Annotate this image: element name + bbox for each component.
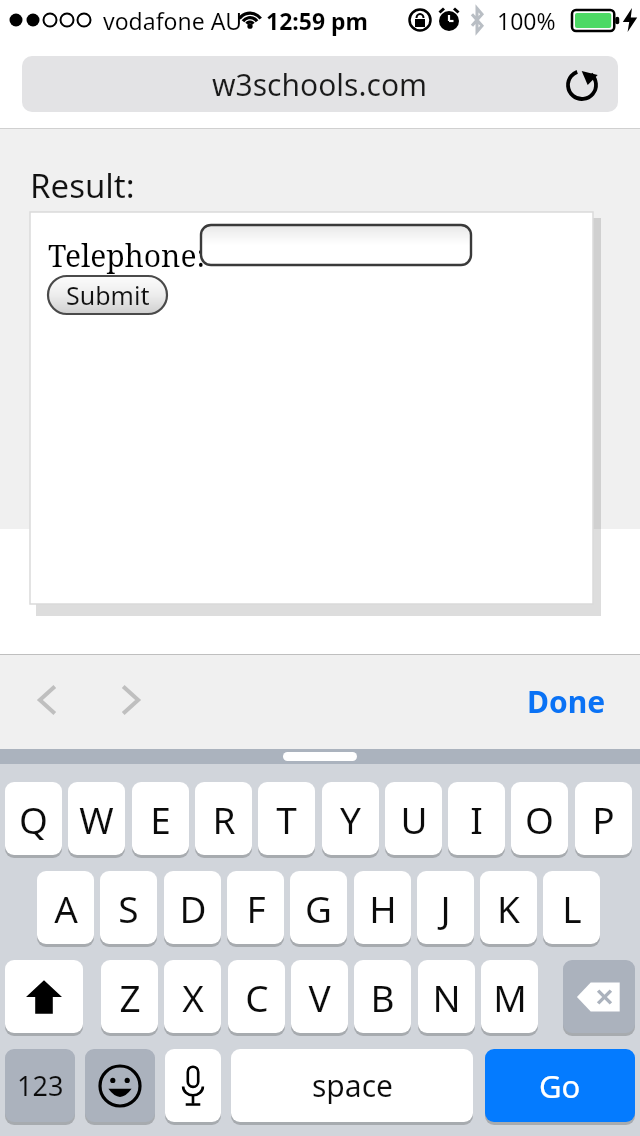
button[interactable]: L	[543, 871, 600, 944]
staticText: K	[497, 883, 520, 933]
button[interactable]: Done	[519, 671, 614, 732]
button[interactable]: T	[258, 782, 315, 855]
staticText: R	[212, 794, 236, 844]
button[interactable]: Emoji	[85, 1049, 155, 1122]
button[interactable]: X	[164, 960, 221, 1033]
button[interactable]: B	[354, 960, 411, 1033]
staticText: G	[305, 883, 332, 933]
staticText: N	[432, 972, 461, 1022]
button[interactable]: U	[385, 782, 442, 855]
staticText: Y	[340, 794, 361, 844]
staticText: S	[118, 883, 139, 933]
staticText: Result:	[30, 163, 135, 208]
button[interactable]: w3schools.com	[22, 56, 618, 112]
button[interactable]: Dictate	[165, 1049, 221, 1122]
staticText: Q	[19, 794, 48, 844]
button[interactable]: W	[68, 782, 125, 855]
button[interactable]: E	[132, 782, 189, 855]
staticText: space	[312, 1065, 393, 1106]
staticText: V	[308, 972, 331, 1022]
button[interactable]	[201, 225, 471, 265]
button[interactable]: Next field	[100, 670, 160, 730]
staticText: Telephone:	[48, 235, 206, 276]
staticText: Done	[527, 681, 606, 722]
button[interactable]: Go	[485, 1049, 635, 1122]
staticText: J	[440, 883, 451, 933]
button[interactable]: H	[354, 871, 411, 944]
button[interactable]: G	[290, 871, 347, 944]
button[interactable]: A	[37, 871, 94, 944]
staticText: 100%	[497, 5, 556, 36]
staticText: w3schools.com	[212, 64, 428, 105]
button[interactable]: V	[291, 960, 348, 1033]
staticText: Go	[539, 1065, 581, 1107]
staticText: C	[245, 972, 269, 1022]
button[interactable]: Previous field	[18, 670, 78, 730]
button[interactable]: F	[227, 871, 284, 944]
button[interactable]: Q	[5, 782, 62, 855]
staticText: X	[182, 972, 204, 1022]
button[interactable]: R	[195, 782, 252, 855]
button[interactable]: Submit	[48, 276, 167, 314]
staticText: I	[470, 794, 483, 844]
staticText: 12:59 pm	[266, 5, 369, 36]
staticText: U	[400, 794, 428, 844]
staticText: L	[562, 883, 582, 933]
staticText: Z	[119, 972, 141, 1022]
button[interactable]: S	[100, 871, 157, 944]
button[interactable]: I	[448, 782, 505, 855]
button[interactable]: M	[481, 960, 538, 1033]
staticText: vodafone AU	[103, 5, 243, 36]
staticText: O	[525, 794, 554, 844]
button[interactable]: Shift	[5, 960, 83, 1033]
button[interactable]: Reload	[554, 56, 610, 112]
staticText: E	[150, 794, 171, 844]
button[interactable]: J	[417, 871, 474, 944]
button[interactable]: space	[231, 1049, 473, 1122]
button[interactable]: 123	[5, 1049, 75, 1122]
staticText: F	[246, 883, 266, 933]
button[interactable]: Backspace	[563, 960, 635, 1033]
button[interactable]: C	[228, 960, 285, 1033]
staticText: T	[276, 794, 297, 844]
staticText: A	[54, 883, 78, 933]
button[interactable]: K	[480, 871, 537, 944]
staticText: B	[370, 972, 395, 1022]
button[interactable]: Hide keyboard handle	[283, 752, 357, 761]
staticText: 123	[17, 1067, 64, 1104]
button[interactable]: O	[511, 782, 568, 855]
staticText: M	[493, 972, 527, 1022]
staticText: D	[179, 883, 207, 933]
staticText: W	[79, 794, 114, 844]
button[interactable]: Y	[322, 782, 379, 855]
staticText: P	[592, 794, 615, 844]
staticText: H	[369, 883, 397, 933]
button[interactable]: P	[575, 782, 632, 855]
button[interactable]: D	[164, 871, 221, 944]
button[interactable]: Z	[101, 960, 158, 1033]
button[interactable]: N	[418, 960, 475, 1033]
staticText: Submit	[66, 278, 150, 312]
